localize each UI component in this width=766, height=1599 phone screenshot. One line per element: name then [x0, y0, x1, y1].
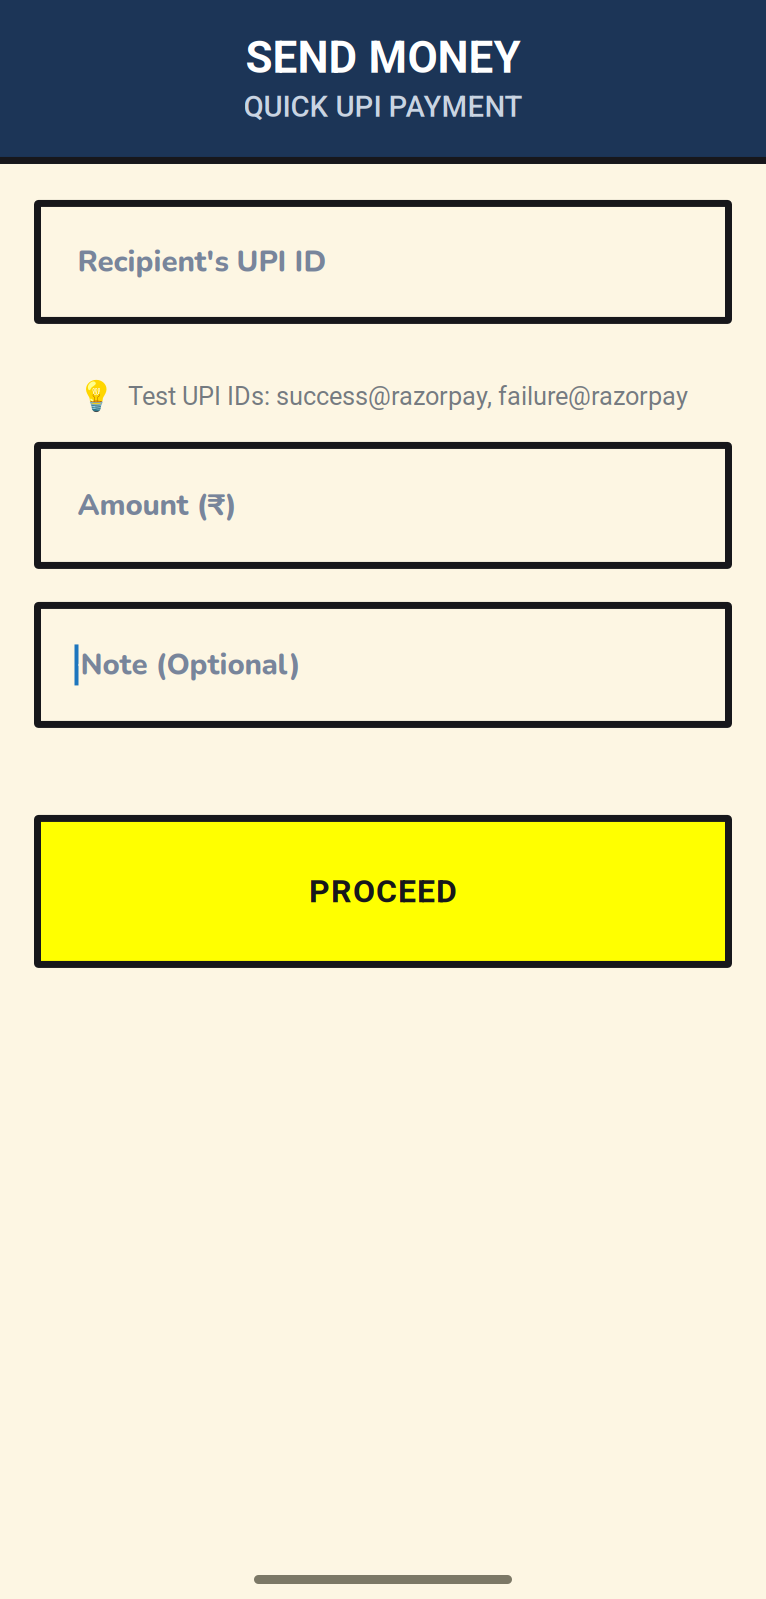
staticText: SEND MONEY	[245, 32, 520, 84]
staticText: 💡	[78, 379, 115, 414]
staticText: PROCEED	[309, 873, 457, 910]
staticText: Test UPI IDs: success@razorpay, failure@…	[128, 382, 688, 411]
button[interactable]: PROCEED	[37, 818, 728, 964]
staticText: Note (Optional)	[80, 645, 300, 685]
button[interactable]: Recipient's UPI ID	[37, 203, 728, 320]
staticText: QUICK UPI PAYMENT	[243, 90, 522, 124]
button[interactable]: Note (Optional)	[37, 605, 728, 724]
staticText: Amount (₹)	[77, 485, 236, 525]
button[interactable]: Amount (₹)	[37, 445, 728, 565]
staticText: Recipient's UPI ID	[77, 242, 326, 282]
